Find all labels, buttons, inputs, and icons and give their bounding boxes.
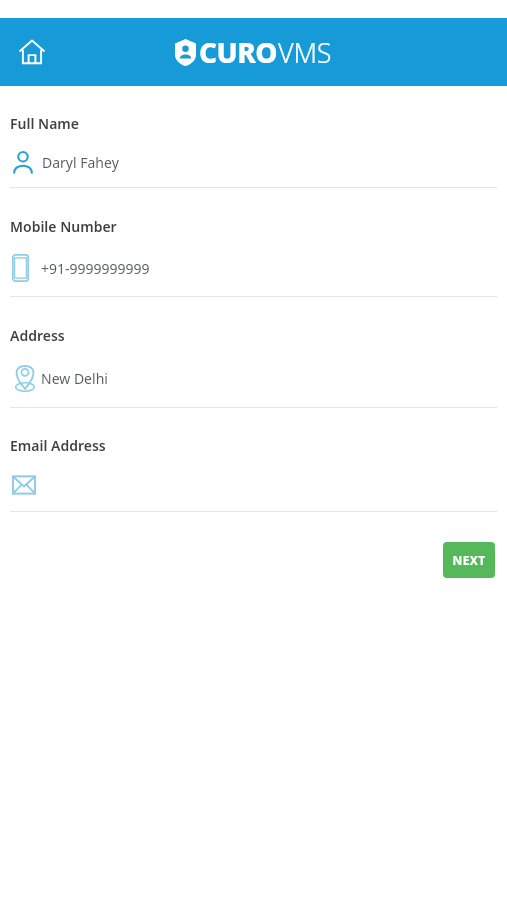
button[interactable]: NEXT <box>443 542 495 578</box>
staticText: VMS <box>278 34 332 71</box>
button[interactable]: Mobile Number <box>0 217 507 297</box>
staticText: Daryl Fahey <box>42 153 119 172</box>
staticText: CURO <box>199 33 278 71</box>
button[interactable]: Email Address <box>0 436 507 512</box>
staticText: Email Address <box>10 436 106 455</box>
staticText: Mobile Number <box>10 217 117 236</box>
staticText: NEXT <box>452 552 486 568</box>
button[interactable]: Full Name <box>0 114 507 188</box>
button[interactable]: Home <box>8 28 56 76</box>
staticText: +91-9999999999 <box>41 259 150 278</box>
staticText: New Delhi <box>41 369 108 388</box>
staticText: Full Name <box>10 114 79 133</box>
staticText: Address <box>10 326 65 345</box>
button[interactable]: Address <box>0 326 507 408</box>
